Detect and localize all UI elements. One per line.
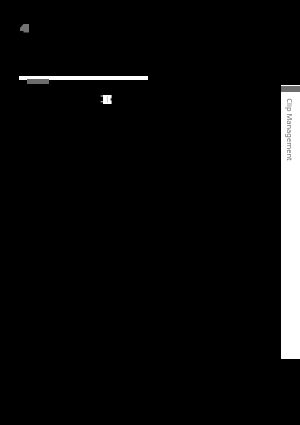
button[interactable]: Back	[8, 12, 40, 44]
staticText: Clip Management	[285, 98, 295, 161]
button[interactable]: Playhead	[99, 91, 117, 109]
button[interactable]: Clip Management panel	[281, 85, 300, 359]
button[interactable]: Timeline	[19, 76, 148, 80]
